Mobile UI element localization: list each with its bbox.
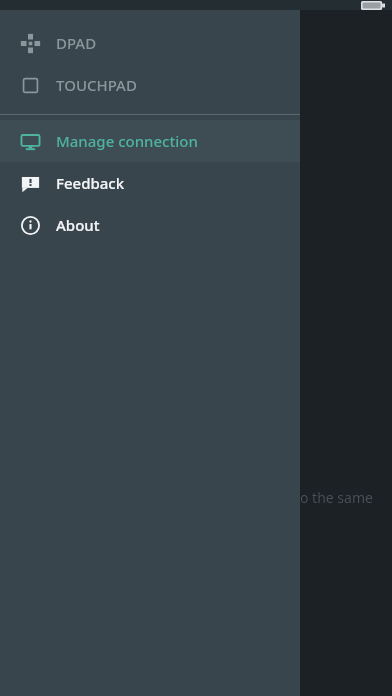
other: Battery <box>361 1 385 10</box>
button[interactable]: DPAD <box>0 22 300 64</box>
button[interactable]: Manage connection <box>0 120 300 162</box>
staticText: Feedback <box>56 173 125 193</box>
button[interactable]: TOUCHPAD <box>0 64 300 106</box>
staticText: TOUCHPAD <box>56 75 137 95</box>
button[interactable]: Feedback <box>0 162 300 204</box>
button[interactable]: About <box>0 204 300 246</box>
staticText: About <box>56 215 100 235</box>
staticText: o the same <box>300 488 373 507</box>
staticText: Manage connection <box>56 131 198 151</box>
staticText: DPAD <box>56 33 97 53</box>
